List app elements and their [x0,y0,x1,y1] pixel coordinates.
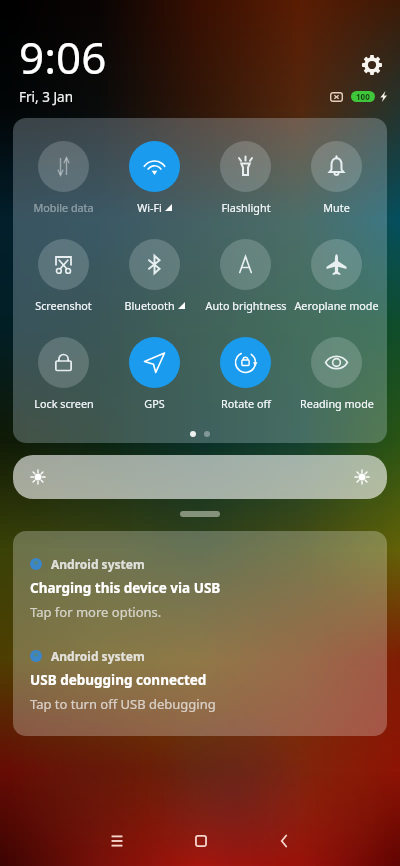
button[interactable]: Back [242,820,325,862]
staticText: Reading mode [300,396,374,411]
button[interactable]: Android system [30,556,373,621]
staticText: Charging this device via USB [30,579,221,597]
button[interactable]: Mobile data [18,141,109,215]
staticText: Mute [323,200,350,215]
button[interactable]: Flashlight [200,141,291,215]
button[interactable]: Brightness [13,455,387,499]
button[interactable]: Mute [291,141,382,215]
staticText: 9:06 [19,27,107,87]
staticText: USB debugging connected [30,671,207,689]
button[interactable]: Android system [30,648,373,713]
staticText: Android system [51,648,145,664]
button[interactable]: Home [159,820,242,862]
staticText: GPS [144,396,165,411]
staticText: Auto brightness [205,298,287,313]
button[interactable]: Reading mode [291,337,382,411]
button[interactable]: Wi-Fi [109,141,200,215]
staticText: Tap for more options. [30,603,162,621]
button[interactable]: Settings [362,55,382,75]
staticText: Screenshot [35,298,92,313]
button[interactable]: Screenshot [18,239,109,313]
button[interactable]: Rotate off [200,337,291,411]
button[interactable]: Lock screen [18,337,109,411]
button[interactable]: Recents [75,820,159,862]
button[interactable]: GPS [109,337,200,411]
staticText: Lock screen [34,396,94,411]
button[interactable]: Bluetooth [109,239,200,313]
staticText: 100 [356,91,370,102]
button[interactable]: Aeroplane mode [291,239,382,313]
staticText: Bluetooth [124,298,175,313]
staticText: Rotate off [221,396,271,411]
button[interactable]: Auto brightness [200,239,291,313]
staticText: Android system [51,556,145,572]
staticText: Fri, 3 Jan [19,88,74,106]
staticText: Flashlight [221,200,271,215]
staticText: Wi-Fi [137,200,162,215]
staticText: Aeroplane mode [294,298,379,313]
staticText: Tap to turn off USB debugging [30,695,216,713]
staticText: Mobile data [33,200,94,215]
